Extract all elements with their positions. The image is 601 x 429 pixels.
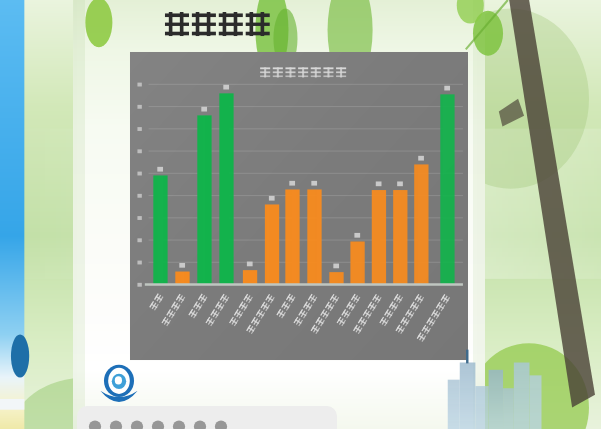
button[interactable]: Mail bbox=[171, 415, 187, 429]
button[interactable]: Search bbox=[108, 415, 124, 429]
button[interactable]: Task View bbox=[129, 415, 145, 429]
button[interactable]: Settings bbox=[213, 415, 229, 429]
button[interactable]: Files bbox=[150, 415, 166, 429]
button[interactable]: Start bbox=[87, 415, 103, 429]
button[interactable]: Start bbox=[77, 406, 337, 429]
button[interactable]: Browser bbox=[192, 415, 208, 429]
